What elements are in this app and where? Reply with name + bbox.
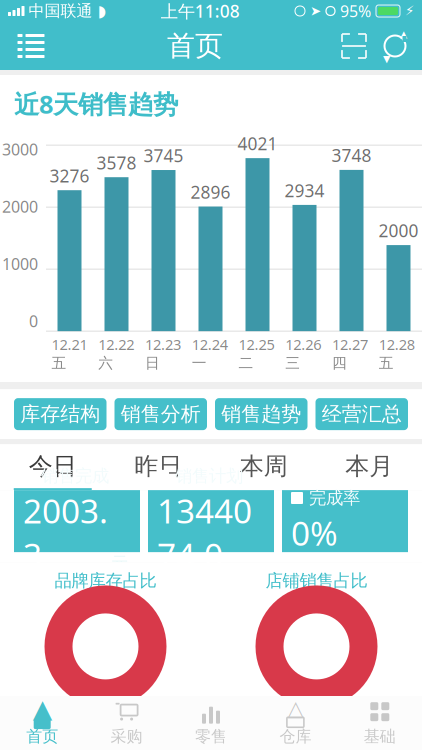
staticText: 12.21五 — [51, 335, 87, 372]
staticText: 95% — [340, 0, 371, 22]
staticText: 1000 — [2, 253, 38, 274]
button[interactable]: △ — [253, 696, 338, 750]
staticText: ▲ — [33, 694, 52, 723]
button[interactable]: 零售 — [169, 696, 253, 750]
staticText: 元 — [111, 553, 128, 574]
staticText: 12.27四 — [332, 335, 368, 372]
button[interactable]: 销售完成 — [14, 490, 140, 552]
staticText: 12.24一 — [192, 335, 228, 372]
button[interactable]: 采购 — [84, 696, 169, 750]
staticText: 2934 — [284, 179, 324, 202]
staticText: 今日 — [29, 451, 77, 481]
staticText: 经营汇总 — [322, 402, 402, 426]
staticText: 首页 — [167, 29, 223, 63]
staticText: 销售完成 — [41, 465, 109, 486]
button[interactable]: ▲ — [0, 696, 84, 750]
staticText: 品牌库存占比 — [54, 570, 156, 591]
staticText: 仓库 — [279, 727, 311, 746]
staticText: ▾ — [383, 50, 390, 67]
button[interactable]: 本月 — [316, 444, 422, 490]
staticText: 近8天销售趋势 — [14, 87, 178, 121]
staticText: 2003.3 — [23, 488, 108, 577]
staticText: 12.25二 — [238, 335, 274, 372]
staticText: 销售趋势 — [221, 402, 301, 426]
staticText: 12.23日 — [145, 335, 181, 372]
button[interactable]: 销售分析 — [114, 398, 207, 430]
staticText: 4021 — [237, 132, 277, 155]
staticText: 2896 — [190, 180, 230, 203]
staticText: 采购 — [111, 727, 143, 746]
staticText: 3578 — [96, 151, 136, 174]
staticText: 中国联通 — [28, 1, 92, 21]
button[interactable]: 库存结构 — [14, 398, 106, 430]
staticText: 本周 — [240, 451, 288, 481]
staticText: 销售分析 — [121, 402, 201, 426]
button[interactable]: 销售趋势 — [215, 398, 307, 430]
staticText: 店铺销售占比 — [265, 570, 367, 591]
staticText: 3748 — [331, 144, 371, 167]
button[interactable]: Scan — [334, 23, 374, 69]
staticText: 1344074.0 — [157, 488, 252, 577]
staticText: ▴ — [400, 25, 407, 42]
staticText: 本月 — [345, 451, 393, 481]
staticText: 0 — [29, 310, 38, 332]
button[interactable]: 完成率 — [282, 490, 408, 552]
staticText: ◗ — [97, 2, 105, 20]
staticText: ⚡︎ — [405, 3, 414, 18]
staticText: 上午11:08 — [161, 0, 240, 22]
button[interactable]: Refresh — [374, 23, 416, 69]
staticText: 12.28五 — [379, 335, 415, 372]
staticText: 3000 — [2, 139, 38, 160]
staticText: 库存结构 — [20, 402, 100, 426]
staticText: ➤ — [310, 3, 321, 18]
button[interactable]: Menu — [6, 23, 56, 69]
button[interactable]: 经营汇总 — [315, 398, 408, 430]
button[interactable]: 本周 — [211, 444, 316, 490]
staticText: △ — [287, 696, 303, 720]
staticText: 完成率 — [309, 487, 360, 509]
staticText: 3745 — [143, 144, 183, 167]
staticText: 昨日 — [134, 451, 182, 481]
staticText: 首页 — [26, 727, 58, 746]
button[interactable]: 今日 — [0, 444, 105, 490]
button[interactable]: 基础 — [338, 696, 422, 750]
staticText: 基础 — [364, 727, 396, 746]
staticText: 2000 — [2, 196, 38, 217]
staticText: 3276 — [49, 164, 89, 187]
staticText: 12.22六 — [98, 335, 134, 372]
staticText: 12.26三 — [285, 335, 321, 372]
button[interactable]: 昨日 — [105, 444, 211, 490]
button[interactable]: 销售计划 — [148, 490, 274, 552]
staticText: 零售 — [195, 727, 227, 746]
staticText: 销售计划 — [175, 465, 243, 486]
staticText: 2000 — [378, 219, 418, 242]
staticText: 0% — [291, 511, 338, 555]
